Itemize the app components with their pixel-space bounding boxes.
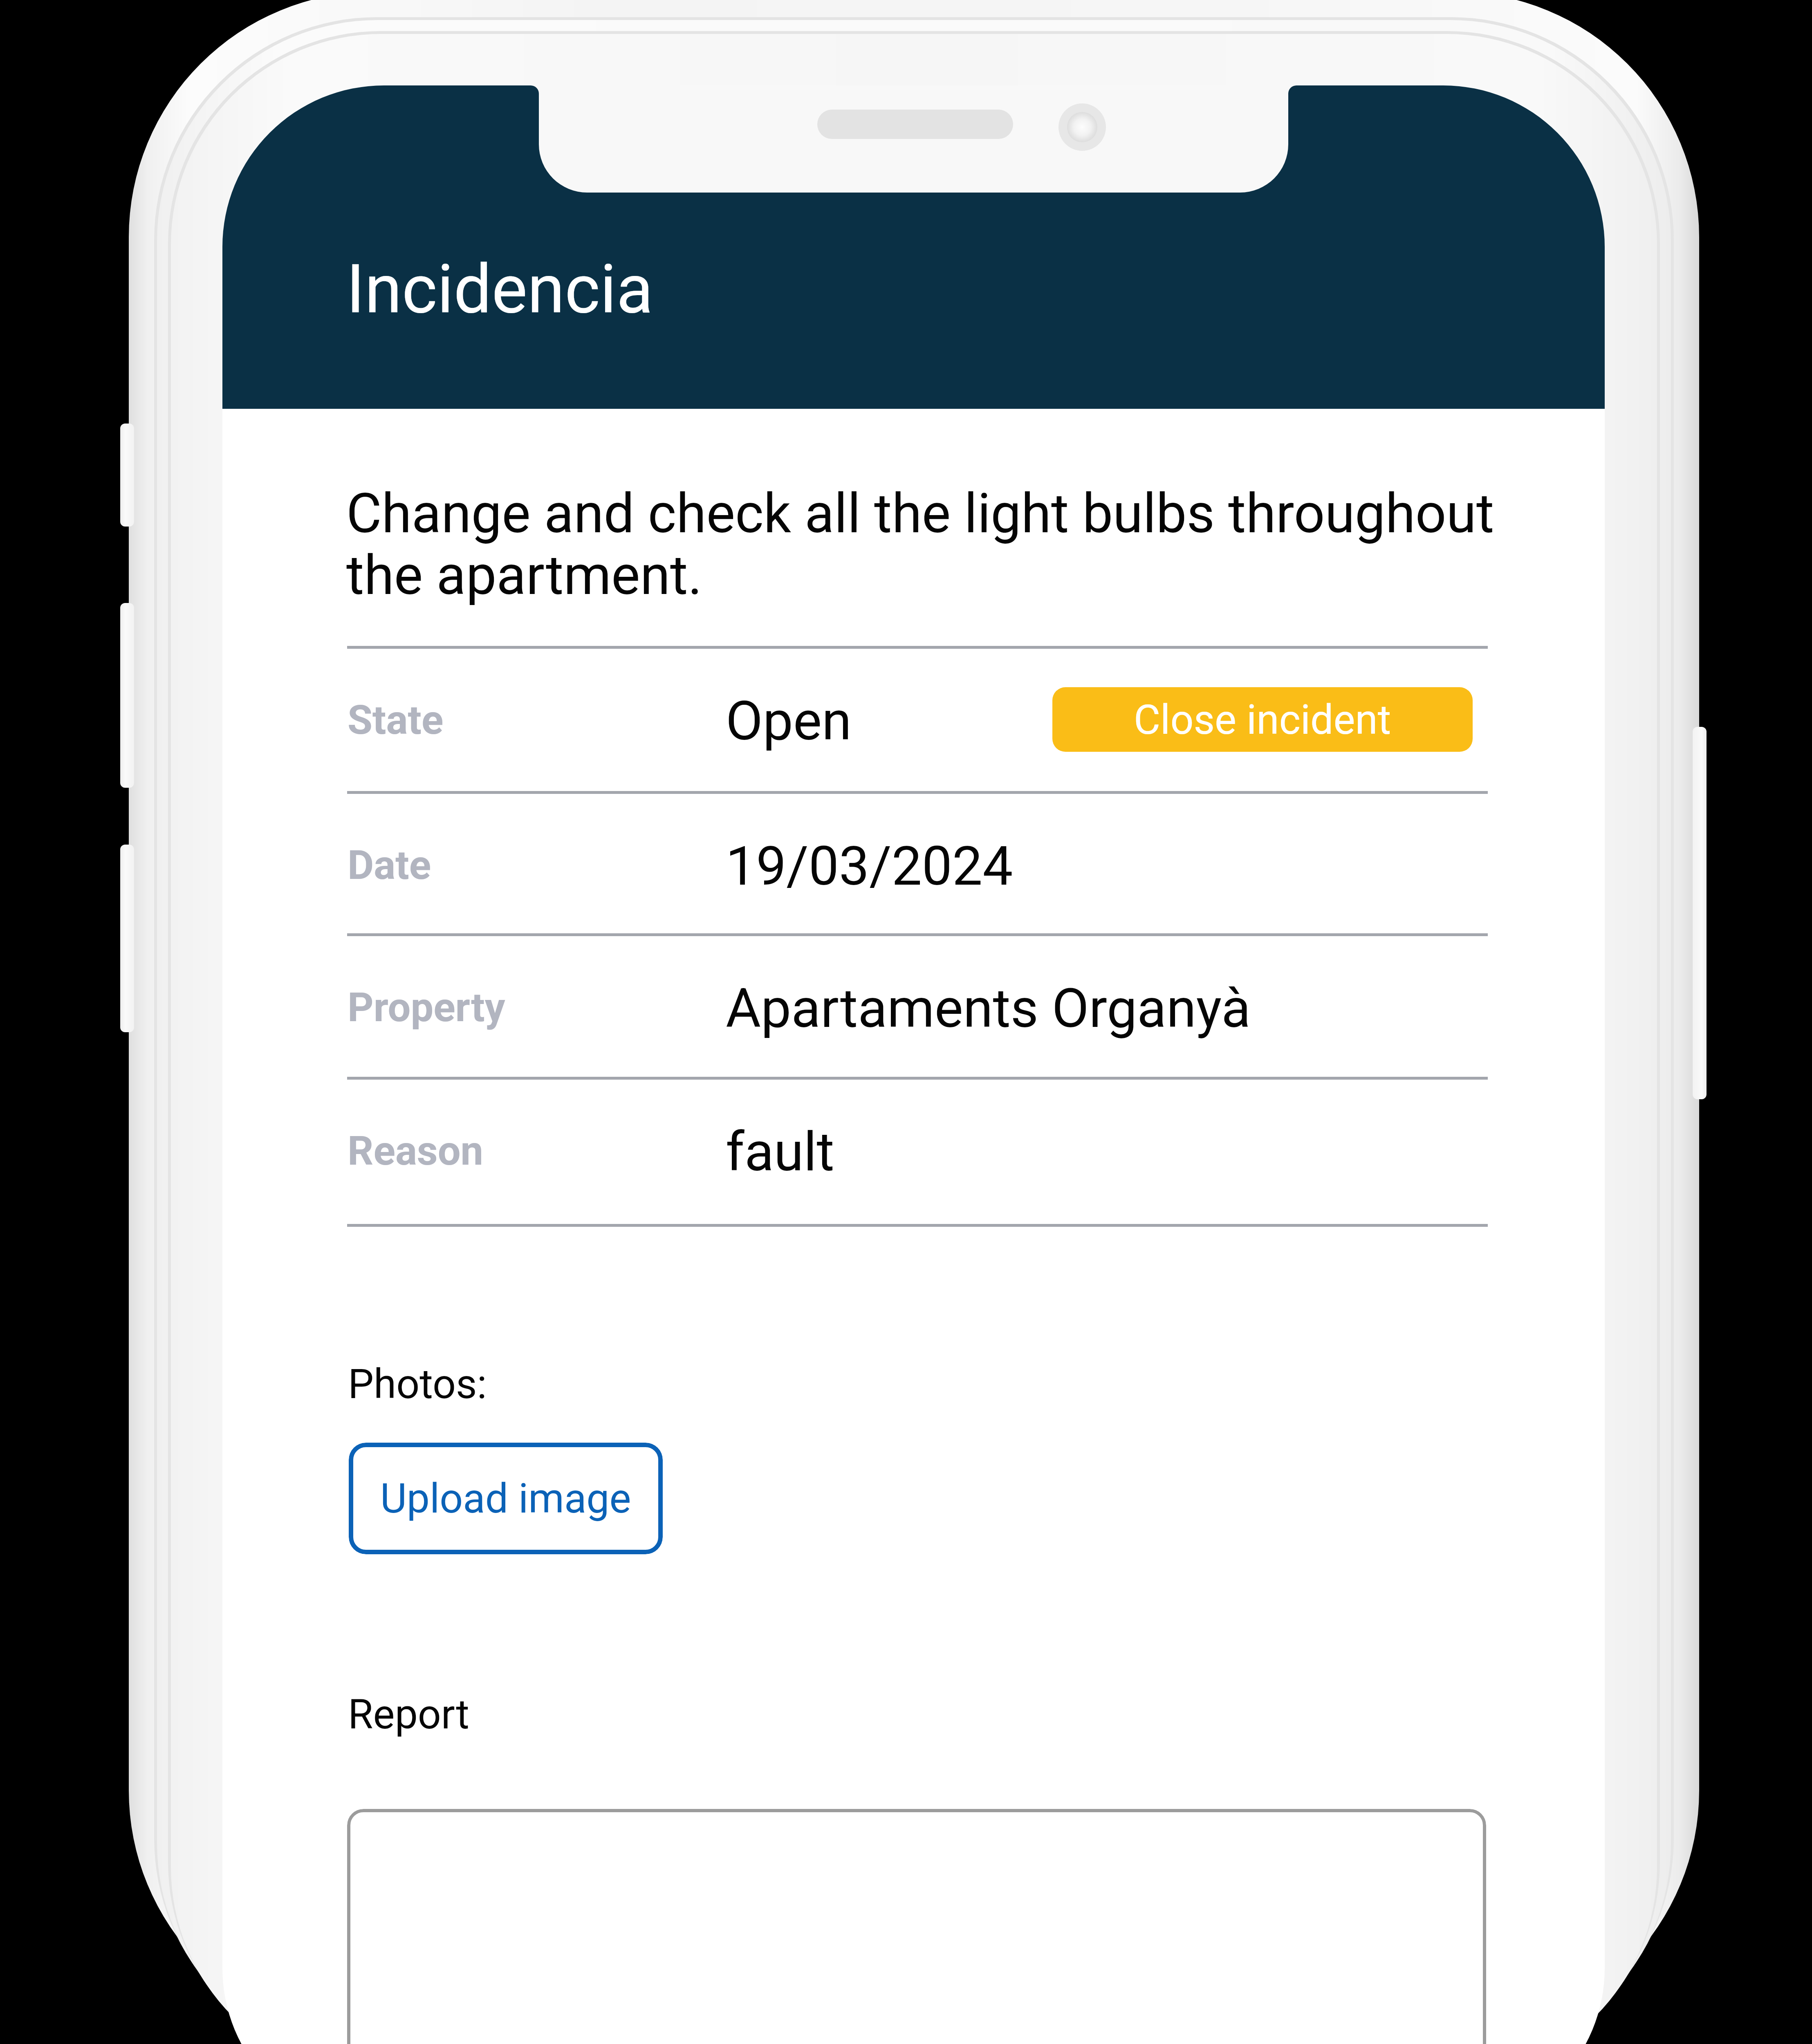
staticText: fault	[726, 1121, 834, 1184]
staticText: State	[348, 696, 444, 744]
staticText: Date	[348, 841, 431, 889]
button[interactable]: Upload image	[349, 1443, 663, 1554]
button[interactable]: Close incident	[1052, 687, 1473, 752]
staticText: Close incident	[1134, 696, 1391, 744]
staticText: Incidencia	[346, 250, 653, 329]
staticText: Report	[348, 1690, 469, 1738]
staticText: Change and check all the light bulbs thr…	[346, 482, 1532, 607]
staticText: Upload image	[380, 1475, 631, 1522]
staticText: Property	[348, 984, 505, 1031]
staticText: Reason	[348, 1127, 484, 1174]
staticText: Photos:	[348, 1360, 487, 1408]
staticText: Open	[726, 690, 852, 753]
staticText: Apartaments Organyà	[726, 977, 1251, 1040]
staticText: 19/03/2024	[726, 835, 1013, 898]
